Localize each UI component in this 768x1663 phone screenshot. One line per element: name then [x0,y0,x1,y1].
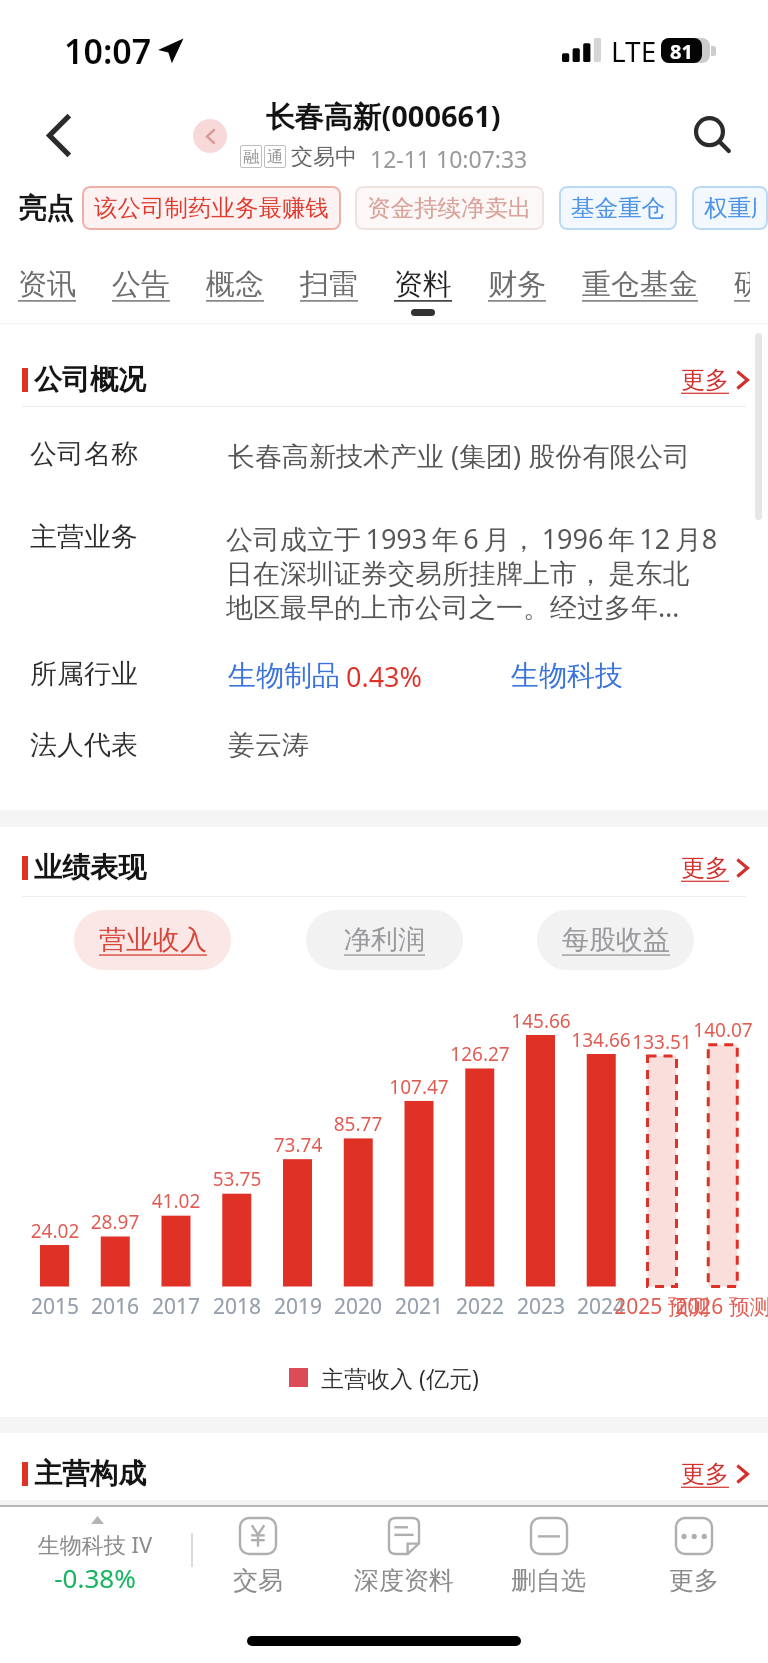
staticText: 140.07 [658,1017,768,1043]
staticText: 145.66 [476,1008,606,1034]
staticText: 2024 [536,1292,666,1321]
staticText: 亮点 [18,191,74,226]
staticText: 41.02 [111,1188,241,1214]
button[interactable]: 更多 [681,846,749,890]
button[interactable]: 返回 [18,95,98,175]
staticText: 更多 [681,1459,729,1489]
staticText: 资料 [394,266,452,303]
staticText: 每股收益 [562,923,670,957]
staticText: 营业收入 [99,923,207,957]
staticText: 2015 [0,1292,120,1321]
staticText: 0.43% [346,658,423,692]
staticText: 扫雷 [300,266,358,303]
button[interactable]: 研报 [716,248,768,323]
button[interactable]: 该公司制药业务最赚钱 [82,186,341,230]
staticText: 姜云涛 [228,728,628,762]
staticText: 更多 [681,853,729,883]
staticText: 长春高新(000661) [133,96,633,136]
staticText: 所属行业 [30,657,430,691]
staticText: 2026 预测 [658,1292,768,1321]
button[interactable]: 更多 [681,358,749,402]
staticText: 更多 [681,365,729,395]
button[interactable]: 更多 [681,1452,749,1496]
staticText: 通 [267,147,283,167]
button[interactable]: 扫雷 [282,248,376,323]
button[interactable]: 每股收益 [537,910,694,970]
staticText: 交易 [233,1565,283,1596]
staticText: 融 [243,147,259,167]
staticText: 生物制品 [228,658,340,692]
staticText: 24.02 [0,1218,120,1244]
staticText: 删自选 [511,1565,586,1596]
staticText: 生物科技 IV [0,1529,195,1559]
staticText: 133.51 [597,1029,727,1055]
button[interactable]: 搜索 [672,95,752,175]
button[interactable]: 上一个 [193,119,227,153]
staticText: 财务 [488,266,546,303]
button[interactable]: 资料 [376,248,470,323]
button[interactable]: 更多 [634,1512,754,1598]
staticText: 研报 [734,266,750,303]
button[interactable]: 权重股 [692,186,768,230]
staticText: 126.27 [415,1041,545,1067]
staticText: 107.47 [354,1074,484,1100]
staticText: 法人代表 [30,728,430,762]
staticText: 重仓基金 [582,266,698,303]
staticText: 2019 [233,1292,363,1321]
button[interactable]: 深度资料 [344,1512,464,1598]
staticText: 深度资料 [354,1565,454,1596]
button[interactable]: 概念 [188,248,282,323]
staticText: 该公司制药业务最赚钱 [94,193,329,223]
staticText: 业绩表现 [34,850,434,885]
button[interactable]: 交易 [198,1512,318,1598]
staticText: 2022 [415,1292,545,1321]
staticText: 更多 [669,1565,719,1596]
button[interactable]: 营业收入 [74,910,231,970]
staticText: 53.75 [172,1166,302,1192]
staticText: 资金持续净卖出 [367,193,532,223]
staticText: 公告 [112,266,170,303]
staticText: 81 [670,38,693,63]
staticText: 2023 [476,1292,606,1321]
staticText: 2021 [354,1292,484,1321]
staticText: 概念 [206,266,264,303]
button[interactable]: 公告 [94,248,188,323]
staticText: 73.74 [233,1132,363,1158]
staticText: 地区最早的上市公司之一。经过多年… [226,588,746,625]
button[interactable]: 基金重仓 [559,186,677,230]
staticText: 2018 [172,1292,302,1321]
staticText: -0.38% [0,1560,195,1595]
button[interactable]: 删自选 [488,1512,608,1598]
button[interactable]: 资讯 [0,248,94,323]
staticText: 净利润 [344,923,425,957]
staticText: 主营收入 (亿元) [321,1362,479,1393]
button[interactable]: 资金持续净卖出 [355,186,544,230]
staticText: 长春高新技术产业 (集团) 股份有限公司 [228,437,738,474]
staticText: 公司成立于 1993 年 6 月， 1996 年 12 月8 [226,520,746,557]
staticText: 日在深圳证券交易所挂牌上市， 是东北 [226,554,746,591]
staticText: 公司概况 [34,362,434,397]
staticText: 28.97 [50,1209,180,1235]
staticText: 主营业务 [30,520,430,554]
staticText: LTE [611,32,691,70]
staticText: 85.77 [293,1111,423,1137]
button[interactable]: 重仓基金 [564,248,716,323]
staticText: 134.66 [536,1027,666,1053]
button[interactable] [10,1510,180,1600]
staticText: 2017 [111,1292,241,1321]
staticText: 权重股 [704,193,756,223]
staticText: 基金重仓 [571,193,665,223]
staticText: 10:07 [64,28,204,74]
staticText: 2025 预测 [597,1292,727,1321]
staticText: 2020 [293,1292,423,1321]
staticText: 主营构成 [34,1456,434,1491]
staticText: 资讯 [18,266,76,303]
staticText: 生物科技 [511,658,623,692]
staticText: 12-11 10:07:33 [370,143,528,169]
button[interactable]: 财务 [470,248,564,323]
staticText: 公司名称 [30,437,430,471]
staticText: 2016 [50,1292,180,1321]
button[interactable]: 净利润 [306,910,463,970]
staticText: 交易中 [291,143,357,169]
